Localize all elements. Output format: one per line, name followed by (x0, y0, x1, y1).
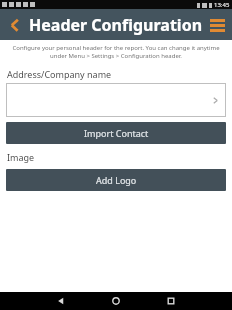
button[interactable] (6, 83, 226, 117)
staticText: Header Configuration (29, 14, 203, 36)
staticText: Add Logo (96, 174, 137, 186)
staticText: Import Contact (84, 127, 149, 139)
button[interactable]: Recents (162, 292, 180, 310)
staticText: Image (7, 151, 35, 163)
staticText: Configure your personal header for the r… (6, 44, 226, 60)
button[interactable]: Back (0, 10, 30, 40)
button[interactable]: Menu (202, 10, 232, 40)
button[interactable]: Import Contact (6, 122, 226, 144)
staticText: Address/Company name (7, 68, 112, 80)
button[interactable]: Home (107, 292, 125, 310)
button[interactable]: Add Logo (6, 169, 226, 191)
button[interactable]: Back (52, 292, 70, 310)
staticText: 13:45 (214, 1, 230, 9)
